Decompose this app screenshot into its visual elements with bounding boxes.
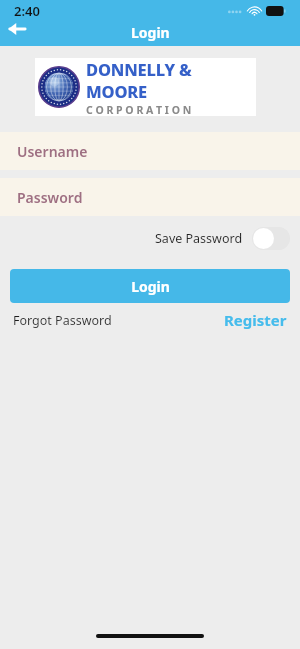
button[interactable]: Back <box>2 14 32 44</box>
staticText: 2:40 <box>14 2 40 20</box>
button[interactable]: Forgot Password <box>13 312 112 329</box>
button[interactable]: Save Password <box>155 227 290 250</box>
staticText: Register <box>224 310 287 330</box>
staticText: C O R P O R A T I O N <box>86 103 192 116</box>
staticText: Login <box>131 277 170 296</box>
staticText: Password <box>17 188 83 207</box>
button[interactable]: Register <box>224 310 287 330</box>
button[interactable]: Password <box>0 178 300 216</box>
staticText: Username <box>17 142 88 161</box>
staticText: Login <box>131 23 170 42</box>
staticText: Forgot Password <box>13 312 112 329</box>
button[interactable]: Username <box>0 132 300 170</box>
staticText: Save Password <box>155 230 243 247</box>
staticText: DONNELLY & MOORE <box>86 58 256 102</box>
button[interactable]: Login <box>10 269 290 303</box>
